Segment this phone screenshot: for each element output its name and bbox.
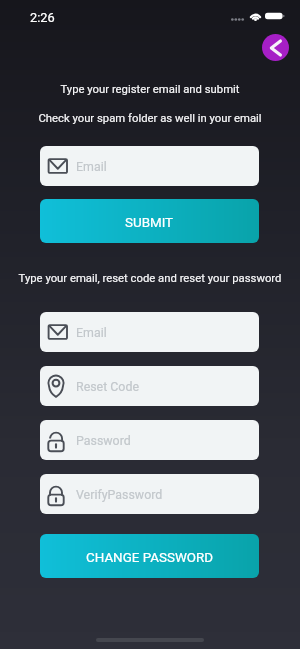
staticText: SUBMIT [125,215,174,231]
staticText: VerifyPassword [76,487,163,502]
staticText: Check your spam folder as well in your e… [0,112,300,125]
button[interactable]: Password [40,420,259,460]
staticText: Email [76,159,107,174]
staticText: Password [76,433,131,448]
staticText: Email [76,325,107,340]
button[interactable]: Reset Code [40,366,259,406]
button[interactable]: Email [40,146,259,186]
button[interactable]: Email [40,312,259,352]
button[interactable]: Back [262,34,289,61]
button[interactable]: CHANGE PASSWORD [40,534,259,578]
staticText: 2:26 [30,10,55,25]
staticText: CHANGE PASSWORD [86,550,214,566]
staticText: Type your email, reset code and reset yo… [0,272,300,285]
staticText: Reset Code [76,379,139,394]
button[interactable]: SUBMIT [40,199,259,243]
staticText: Type your register email and submit [0,83,300,96]
button[interactable]: VerifyPassword [40,474,259,514]
